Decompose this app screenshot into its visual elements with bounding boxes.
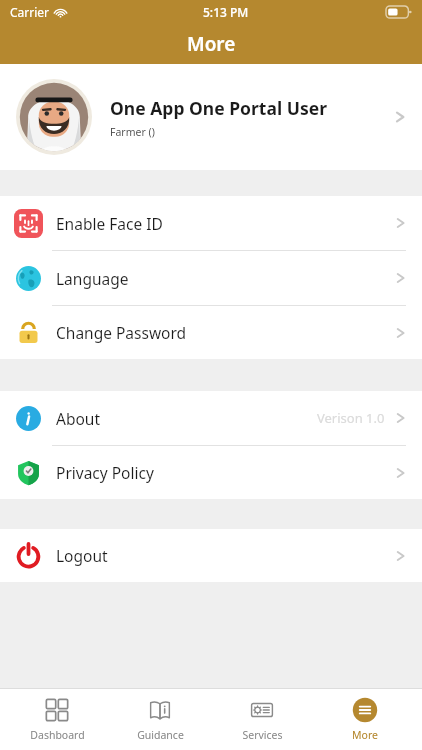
button[interactable]: Language [0,251,422,305]
staticText: More [187,31,236,57]
button[interactable]: Privacy Policy [0,446,422,499]
staticText: About [56,408,100,429]
button[interactable]: More [320,693,410,746]
staticText: Enable Face ID [56,213,163,234]
button[interactable]: Services [217,693,307,746]
staticText: 5:13 PM [203,4,249,20]
staticText: Farmer () [110,125,155,139]
staticText: Verison 1.0 [317,409,385,427]
staticText: Dashboard [30,728,85,742]
button[interactable]: Dashboard [12,693,102,746]
button[interactable]: About [0,391,422,445]
button[interactable]: Change Password [0,306,422,359]
button[interactable]: Guidance [115,693,205,746]
staticText: Carrier [10,4,50,20]
staticText: One App One Portal User [110,96,327,120]
staticText: Change Password [56,322,187,343]
button[interactable]: Enable Face ID [0,196,422,250]
staticText: More [352,728,378,742]
staticText: Privacy Policy [56,462,154,483]
staticText: Guidance [137,728,184,742]
button[interactable]: One App One Portal User [0,64,422,170]
button[interactable]: Logout [0,529,422,582]
staticText: Services [242,728,283,742]
staticText: Language [56,268,129,289]
staticText: Logout [56,545,108,566]
